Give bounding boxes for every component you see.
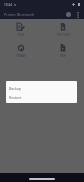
staticText: PDF (60, 53, 66, 58)
button[interactable]: TEXT (0, 19, 42, 40)
staticText: TEXT (17, 32, 25, 37)
button[interactable]: PICTURE (42, 19, 84, 40)
button[interactable]: Bluetooth devices (64, 10, 73, 19)
staticText: Backup (9, 86, 22, 91)
button[interactable]: More options (73, 10, 82, 19)
button[interactable]: DRAW (0, 40, 42, 61)
button[interactable]: Restore (6, 93, 77, 101)
staticText: 10:24 (4, 3, 13, 7)
staticText: PICTURE (57, 32, 70, 37)
staticText: DRAW (16, 53, 26, 58)
staticText: Printer Bluetooth (4, 12, 34, 17)
button[interactable]: PDF (42, 40, 84, 61)
staticText: Restore (9, 95, 22, 100)
button[interactable]: Backup (6, 83, 77, 93)
